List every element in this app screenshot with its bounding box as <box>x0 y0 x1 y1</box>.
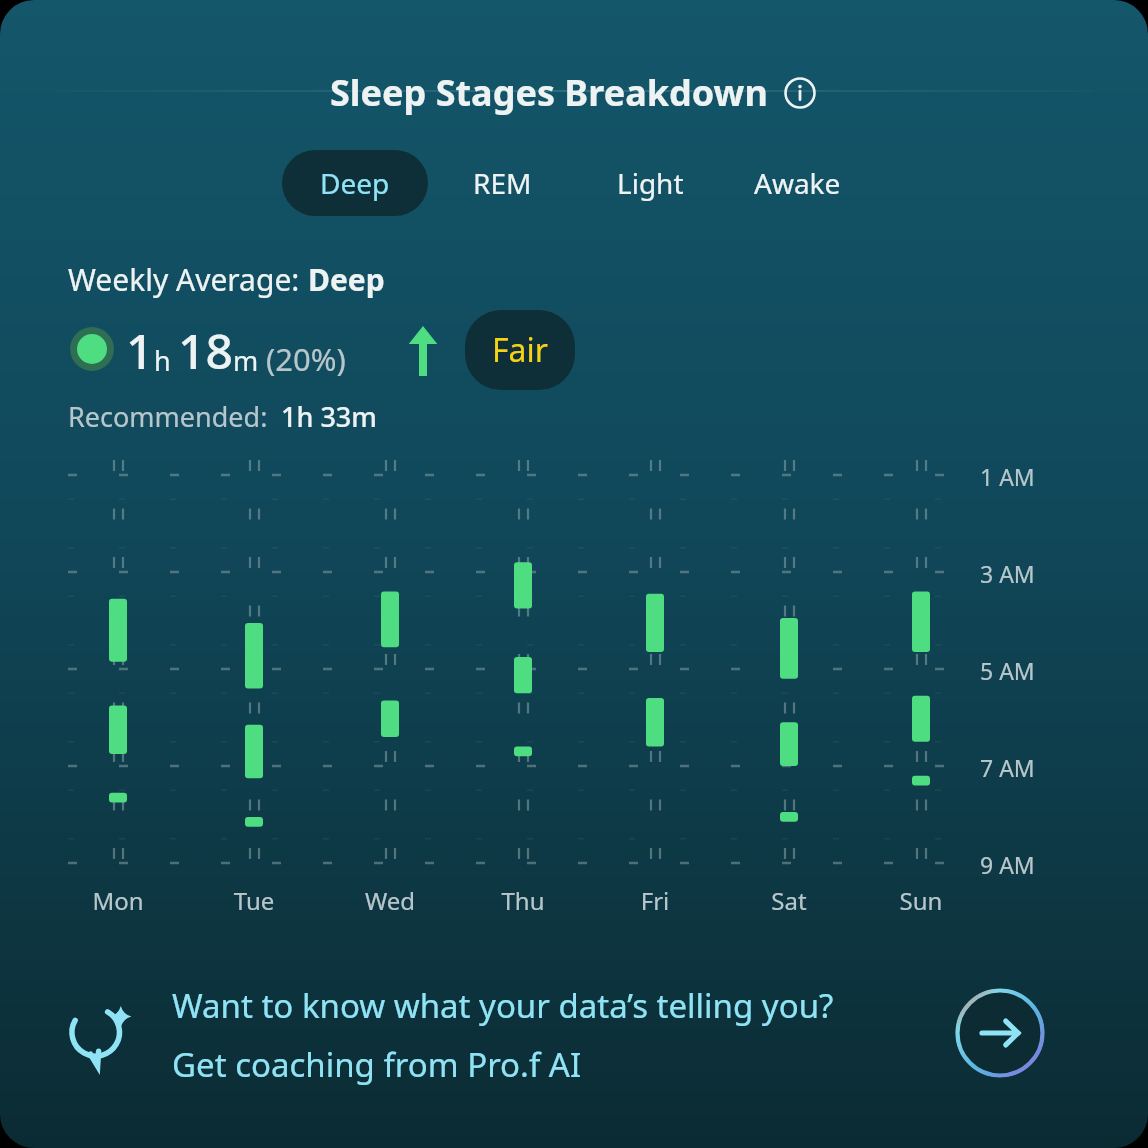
staticText: 7 AM <box>980 752 1035 783</box>
staticText: 9 AM <box>980 849 1035 880</box>
staticText: Awake <box>754 164 841 202</box>
button[interactable]: REM <box>442 150 562 216</box>
staticText: Wed <box>345 884 435 917</box>
staticText: Fri <box>610 884 700 917</box>
staticText: Sun <box>876 884 966 917</box>
button[interactable]: Open AI coaching <box>955 988 1045 1078</box>
staticText: Get coaching from Pro.f AI <box>172 1042 582 1087</box>
staticText: Weekly Average: <box>68 259 308 300</box>
staticText: 18 <box>178 318 233 383</box>
button[interactable]: Light <box>590 150 710 216</box>
staticText: 3 AM <box>980 558 1035 589</box>
staticText: 5 AM <box>980 655 1035 686</box>
staticText: m <box>233 342 266 379</box>
staticText: Recommended: <box>68 398 275 435</box>
staticText: h <box>154 342 178 379</box>
staticText: Sat <box>744 884 834 917</box>
staticText: Deep <box>320 164 390 202</box>
staticText: Deep <box>308 259 385 300</box>
staticText: Tue <box>209 884 299 917</box>
staticText: Sleep Stages Breakdown <box>330 68 768 117</box>
staticText: 1h 33m <box>281 398 377 435</box>
staticText: 1 <box>126 318 154 383</box>
staticText: Want to know what your data’s telling yo… <box>172 983 834 1028</box>
staticText: (20%) <box>266 338 346 380</box>
button[interactable]: Want to know what your data’s telling yo… <box>0 965 1148 1105</box>
button[interactable]: Awake <box>737 150 857 216</box>
staticText: Fair <box>492 328 549 372</box>
staticText: Mon <box>73 884 163 917</box>
button[interactable]: Deep <box>282 150 428 216</box>
staticText: Thu <box>478 884 568 917</box>
button[interactable]: Info about sleep stages <box>782 75 818 111</box>
staticText: REM <box>473 164 532 202</box>
button[interactable]: Fair <box>465 310 575 390</box>
staticText: 1 AM <box>980 461 1035 492</box>
staticText: Light <box>617 164 684 202</box>
